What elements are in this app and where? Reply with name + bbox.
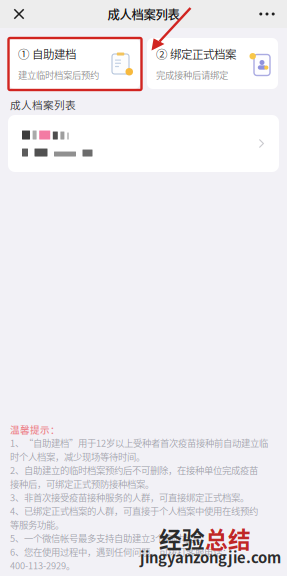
staticText: 接种后，可绑定正式预防接种档案。 bbox=[10, 477, 154, 490]
staticText: ① 自助建档 bbox=[18, 45, 76, 62]
staticText: 建立临时档案后预约 bbox=[18, 68, 99, 81]
staticText: 完成接种后请绑定 bbox=[156, 68, 228, 81]
staticText: 4、已绑定正式档案的人群，可直接于个人档案中使用在线预约 bbox=[10, 504, 258, 517]
staticText: 时个人档案，减少现场等待时间。 bbox=[10, 450, 145, 463]
staticText: 等服务功能。 bbox=[10, 518, 64, 531]
staticText: 1、“自助建档”用于12岁以上受种者首次疫苗接种前自动建立临 bbox=[10, 436, 268, 449]
button[interactable]: ① 自助建档 bbox=[9, 38, 140, 89]
button[interactable]: ② 绑定正式档案 bbox=[147, 38, 278, 89]
staticText: 总结 bbox=[205, 522, 251, 555]
staticText: 温馨提示： bbox=[10, 422, 60, 436]
button[interactable] bbox=[8, 115, 279, 172]
staticText: 成人档案列表 bbox=[107, 5, 179, 23]
staticText: 5、一个微信帐号最多支持自助建立3个临时档案。 bbox=[10, 531, 209, 545]
staticText: 经验 bbox=[159, 522, 205, 555]
button[interactable]: 更多 bbox=[254, 0, 280, 28]
button[interactable]: 关闭 bbox=[7, 0, 31, 28]
staticText: 3、非首次接受疫苗接种服务的人群，可直接绑定正式档案。 bbox=[10, 490, 249, 504]
staticText: 2、自助建立的临时档案预约后不可删除，在接种单位完成疫苗 bbox=[10, 463, 258, 477]
staticText: 成人档案列表 bbox=[10, 97, 76, 112]
staticText: 6、您在使用过程中，遇到任何问题，可拨打客服电话： bbox=[10, 545, 231, 558]
staticText: ② 绑定正式档案 bbox=[156, 45, 236, 62]
staticText: 400-113-2929。 bbox=[10, 558, 75, 572]
staticText: jingyanzongjie.com bbox=[140, 546, 281, 567]
